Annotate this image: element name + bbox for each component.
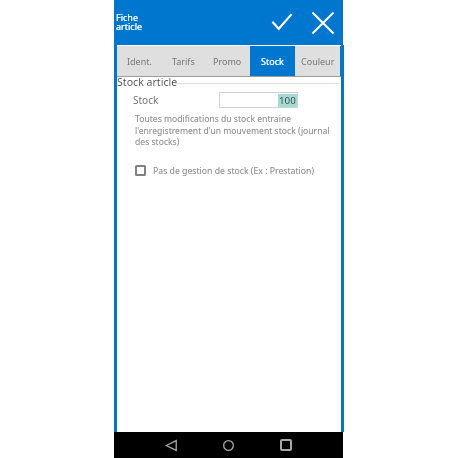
button[interactable]: Tarifs (161, 46, 205, 76)
staticText: Ident. (127, 55, 152, 67)
button[interactable]: Stock (250, 46, 295, 76)
button[interactable]: Recents (273, 432, 299, 458)
button[interactable]: Close (309, 9, 337, 37)
button[interactable]: Pas de gestion de stock (Ex : Prestation… (135, 162, 332, 179)
staticText: Tarifs (172, 55, 195, 67)
button[interactable]: Promo (205, 46, 250, 76)
staticText: 100 (279, 94, 296, 107)
staticText: Pas de gestion de stock (Ex : Prestation… (153, 165, 315, 177)
staticText: article (116, 20, 143, 32)
staticText: Promo (213, 55, 242, 67)
staticText: Stock article (117, 75, 178, 89)
button[interactable]: Ident. (117, 46, 161, 76)
button[interactable]: Home (215, 432, 241, 458)
staticText: Stock (261, 55, 284, 67)
staticText: Stock (133, 93, 159, 107)
button[interactable]: 100 (219, 92, 298, 108)
button[interactable]: Back (158, 432, 184, 458)
button[interactable]: Couleur (295, 46, 340, 76)
staticText: Fiche (116, 11, 138, 23)
staticText: Couleur (301, 55, 335, 67)
staticText: Toutes modifications du stock entraine l… (135, 113, 331, 147)
button[interactable]: Validate (267, 8, 295, 36)
